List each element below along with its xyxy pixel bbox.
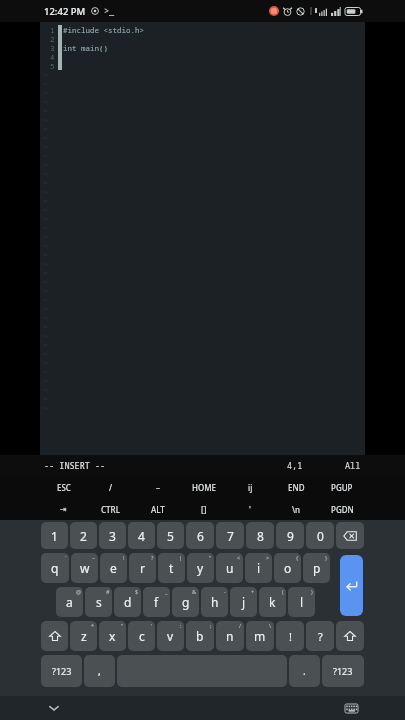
button[interactable]: r	[129, 553, 156, 583]
staticText: ~	[43, 124, 48, 133]
button[interactable]: w	[71, 553, 98, 583]
staticText: ~	[43, 259, 48, 268]
button[interactable]: PGDN	[319, 498, 365, 520]
staticText: 7	[227, 528, 234, 544]
button[interactable]: g	[172, 587, 199, 617]
staticText: ~	[43, 331, 48, 340]
staticText: ~	[43, 88, 48, 97]
button[interactable]: []	[181, 498, 227, 520]
button[interactable]: o	[274, 553, 301, 583]
staticText: ~	[43, 295, 48, 304]
button[interactable]: z	[70, 621, 97, 651]
button[interactable]: h	[201, 587, 228, 617]
staticText: END	[288, 482, 305, 493]
button[interactable]: 6	[186, 522, 214, 549]
staticText: <	[237, 554, 241, 561]
staticText: ~	[43, 367, 48, 376]
button[interactable]: ALT	[134, 498, 181, 520]
button[interactable]: 1	[41, 522, 68, 549]
staticText: 3	[50, 43, 55, 52]
staticText: ~	[43, 196, 48, 205]
button[interactable]: q	[41, 553, 69, 583]
button[interactable]: !	[276, 621, 304, 651]
button[interactable]: k	[259, 587, 286, 617]
staticText: 12:42 PM	[44, 5, 86, 18]
button[interactable]: ?123	[322, 655, 364, 687]
button[interactable]: y	[187, 553, 214, 583]
staticText: ~	[92, 554, 96, 561]
staticText: b	[196, 628, 204, 644]
button[interactable]: e	[100, 553, 127, 583]
staticText: int main()	[63, 43, 108, 52]
button[interactable]: 4	[128, 522, 155, 549]
staticText: \n	[292, 504, 301, 515]
button[interactable]: m	[246, 621, 274, 651]
button[interactable]: d	[114, 587, 141, 617]
button[interactable]: 9	[276, 522, 304, 549]
button[interactable]: '	[227, 498, 273, 520]
staticText: 2	[80, 528, 87, 544]
button[interactable]: HOME	[181, 476, 227, 498]
button[interactable]: ?	[306, 621, 334, 651]
staticText: |	[179, 554, 183, 561]
button[interactable]: ij	[227, 476, 273, 498]
button[interactable]: n	[216, 621, 244, 651]
button[interactable]: Switch keyboard	[341, 698, 361, 718]
button[interactable]: Shift	[336, 621, 364, 651]
button[interactable]: 2	[70, 522, 97, 549]
staticText: 9	[287, 528, 294, 544]
button[interactable]: Hide keyboard	[44, 698, 64, 718]
button[interactable]: Backspace	[336, 522, 364, 549]
button[interactable]: \n	[273, 498, 319, 520]
button[interactable]: END	[273, 476, 319, 498]
button[interactable]: c	[128, 621, 155, 651]
button[interactable]: –	[134, 476, 181, 498]
staticText: ~	[43, 205, 48, 214]
button[interactable]: .	[289, 655, 320, 687]
button[interactable]: 5	[157, 522, 184, 549]
button[interactable]: Shift	[41, 621, 68, 651]
button[interactable]: Enter	[340, 555, 363, 616]
staticText: ~	[43, 169, 48, 178]
staticText: ~	[43, 268, 48, 277]
button[interactable]: f	[143, 587, 170, 617]
button[interactable]: t	[158, 553, 185, 583]
button[interactable]: 7	[216, 522, 244, 549]
button[interactable]: /	[87, 476, 134, 498]
button[interactable]: CTRL	[87, 498, 134, 520]
staticText: ?123	[52, 665, 72, 677]
staticText: HOME	[192, 482, 217, 493]
staticText: ~	[43, 79, 48, 88]
button[interactable]: ESC	[40, 476, 87, 498]
button[interactable]: v	[157, 621, 184, 651]
button[interactable]: 0	[306, 522, 334, 549]
staticText: j	[242, 594, 246, 610]
button[interactable]: b	[186, 621, 214, 651]
staticText: "	[209, 554, 212, 561]
staticText: w	[80, 560, 90, 576]
button[interactable]: PGUP	[319, 476, 365, 498]
staticText: –	[156, 482, 160, 493]
button[interactable]: 8	[246, 522, 274, 549]
staticText: 1	[51, 528, 58, 544]
button[interactable]: 3	[99, 522, 126, 549]
staticText: []	[201, 504, 207, 515]
staticText: \	[269, 622, 272, 629]
button[interactable]: a	[56, 587, 83, 617]
button[interactable]: p	[303, 553, 330, 583]
button[interactable]: j	[230, 587, 257, 617]
button[interactable]: l	[288, 587, 315, 617]
button[interactable]: ⇥	[40, 498, 87, 520]
staticText: #	[106, 588, 110, 595]
staticText: :	[180, 622, 182, 629]
staticText: ~	[43, 115, 48, 124]
button[interactable]: ,	[84, 655, 115, 687]
button[interactable]: x	[99, 621, 126, 651]
staticText: 4	[50, 52, 55, 61]
button[interactable]: i	[245, 553, 272, 583]
button[interactable]: ?123	[41, 655, 82, 687]
button[interactable]: u	[216, 553, 243, 583]
button[interactable]: s	[85, 587, 112, 617]
staticText: &	[192, 588, 197, 595]
